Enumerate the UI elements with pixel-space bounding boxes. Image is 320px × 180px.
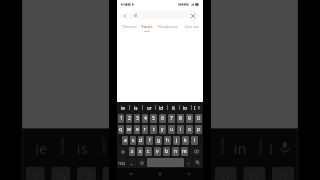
button[interactable]: b xyxy=(163,147,170,156)
button[interactable]: 2 xyxy=(126,114,132,123)
button[interactable]: 7 xyxy=(168,114,175,123)
staticText: it xyxy=(172,105,175,111)
button[interactable]: x xyxy=(137,147,143,156)
button[interactable]: y xyxy=(159,125,166,134)
button[interactable]: . xyxy=(186,158,191,167)
button[interactable]: or xyxy=(143,102,155,113)
button[interactable]: ie xyxy=(22,128,61,164)
button[interactable]: Back xyxy=(174,168,203,180)
button[interactable]: 4 xyxy=(102,167,122,180)
button[interactable]: 8 xyxy=(214,167,237,180)
button[interactable]: w xyxy=(126,125,132,134)
button[interactable]: k xyxy=(182,136,189,145)
button[interactable]: 8 xyxy=(177,114,184,123)
button[interactable]: p xyxy=(195,125,202,134)
button[interactable]: id xyxy=(147,128,182,164)
button[interactable]: Shift xyxy=(118,147,127,156)
other: Shift xyxy=(121,150,125,154)
button[interactable]: 7 xyxy=(186,167,208,180)
button[interactable]: 3 xyxy=(134,114,140,123)
button[interactable]: a xyxy=(122,136,128,145)
button[interactable]: Fonts xyxy=(138,22,156,33)
button[interactable]: v xyxy=(154,147,161,156)
button[interactable]: o xyxy=(186,125,193,134)
button[interactable]: n xyxy=(172,147,179,156)
staticText: ie xyxy=(35,138,48,157)
button[interactable]: s xyxy=(130,136,136,145)
staticText: b xyxy=(165,148,169,155)
button[interactable]: 2 xyxy=(51,167,70,180)
button[interactable]: it xyxy=(186,128,221,164)
button[interactable]: in xyxy=(180,102,191,113)
button[interactable]: is xyxy=(130,102,142,113)
button[interactable]: Backspace xyxy=(190,147,202,156)
staticText: . xyxy=(188,160,190,166)
button[interactable]: Voice input xyxy=(262,128,298,164)
button[interactable]: 1 xyxy=(26,167,45,180)
button[interactable]: 6 xyxy=(157,167,179,180)
button[interactable]: Emoji keyboard xyxy=(138,158,145,167)
button[interactable]: l xyxy=(191,136,198,145)
button[interactable]: si xyxy=(129,11,187,19)
button[interactable]: r xyxy=(142,125,148,134)
button[interactable]: 9 xyxy=(243,167,266,180)
button[interactable]: 0 xyxy=(195,114,202,123)
button[interactable]: g xyxy=(155,136,162,145)
button[interactable]: in xyxy=(224,128,259,164)
button[interactable]: e xyxy=(134,125,140,134)
button[interactable]: or xyxy=(106,128,144,164)
button[interactable]: j xyxy=(173,136,180,145)
button[interactable]: 4 xyxy=(142,114,148,123)
button[interactable]: t xyxy=(150,125,157,134)
button[interactable]: z xyxy=(129,147,135,156)
staticText: l xyxy=(194,137,196,144)
button[interactable]: it xyxy=(168,102,179,113)
other: Backspace xyxy=(194,149,199,154)
button[interactable]: h xyxy=(164,136,171,145)
staticText: Live wa xyxy=(184,24,199,30)
staticText: or xyxy=(147,105,152,111)
button[interactable]: 6 xyxy=(159,114,166,123)
button[interactable]: Recent apps xyxy=(117,168,145,180)
button[interactable]: Themes xyxy=(120,22,138,33)
button[interactable]: 9 xyxy=(186,114,193,123)
staticText: , xyxy=(131,160,133,166)
button[interactable]: id xyxy=(156,102,167,113)
button[interactable]: Voice input xyxy=(192,102,203,113)
button[interactable]: ?123 xyxy=(118,158,126,167)
button[interactable]: Live wa xyxy=(180,22,202,33)
button[interactable]: Home xyxy=(145,168,174,180)
button[interactable]: f xyxy=(146,136,153,145)
button[interactable]: ie xyxy=(117,102,129,113)
staticText: 9 xyxy=(188,115,191,122)
button[interactable]: i xyxy=(177,125,184,134)
staticText: x xyxy=(139,148,142,155)
button[interactable]: 5 xyxy=(128,167,150,180)
button[interactable]: d xyxy=(138,136,144,145)
button[interactable]: 1 xyxy=(118,114,124,123)
button[interactable]: 5 xyxy=(150,114,157,123)
button[interactable]: Clear search xyxy=(187,10,198,21)
button[interactable]: Navigate back xyxy=(120,11,129,20)
staticText: k xyxy=(184,137,187,144)
button[interactable]: is xyxy=(64,128,102,164)
button[interactable]: c xyxy=(145,147,152,156)
button[interactable]: , xyxy=(128,158,136,167)
button[interactable]: m xyxy=(181,147,188,156)
button[interactable]: Search xyxy=(193,158,202,167)
button[interactable]: q xyxy=(118,125,124,134)
button[interactable]: u xyxy=(168,125,175,134)
staticText: s xyxy=(132,137,135,144)
other: Search xyxy=(195,160,200,165)
staticText: 4 xyxy=(144,115,147,122)
button[interactable]: Ringtones xyxy=(156,22,180,33)
